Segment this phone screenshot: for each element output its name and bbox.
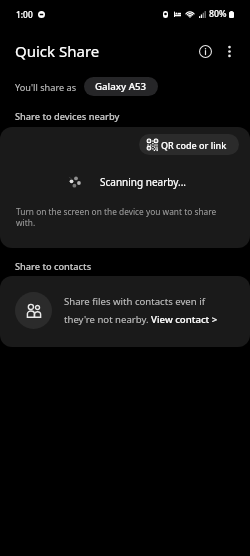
staticText: Share to devices nearby: [15, 110, 120, 123]
staticText: Share files with contacts even if they'r…: [64, 295, 224, 326]
staticText: Galaxy A53: [95, 80, 147, 93]
button[interactable]: Galaxy A53: [84, 77, 158, 96]
staticText: 80%: [209, 8, 227, 20]
staticText: Quick Share: [15, 41, 100, 61]
staticText: Turn on the screen on the device you wan…: [16, 206, 222, 228]
button[interactable]: Information: [192, 38, 218, 64]
staticText: Share to contacts: [15, 260, 92, 273]
staticText: Scanning nearby...: [100, 175, 187, 189]
button[interactable]: Share files with contacts even if they'r…: [0, 276, 250, 347]
staticText: You'll share as: [15, 81, 77, 94]
staticText: 1:00: [16, 9, 33, 20]
staticText: QR code or link: [161, 139, 227, 151]
button[interactable]: QR code or link: [139, 134, 239, 155]
button[interactable]: More options: [216, 38, 242, 64]
